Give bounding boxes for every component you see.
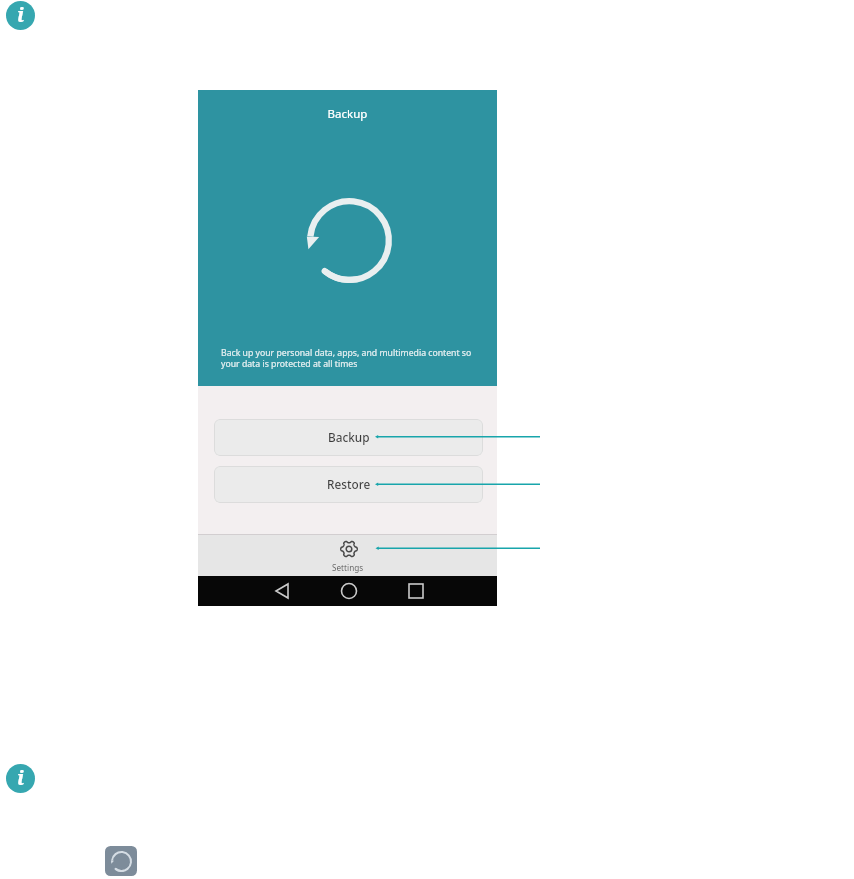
button[interactable]: Back <box>260 576 304 606</box>
button[interactable]: Recent apps <box>394 576 438 606</box>
staticText: i <box>17 1 25 28</box>
staticText: Settings <box>332 562 364 573</box>
button[interactable]: Restore <box>214 466 483 503</box>
button[interactable]: Backup app icon <box>105 846 137 876</box>
button[interactable]: Information <box>6 764 35 793</box>
staticText: Back up your personal data, apps, and mu… <box>221 347 477 370</box>
staticText: Backup <box>328 429 370 445</box>
staticText: i <box>17 764 25 791</box>
button[interactable]: Backup <box>214 419 483 456</box>
button[interactable]: Settings <box>198 534 497 576</box>
button[interactable]: Home <box>327 576 371 606</box>
staticText: Backup <box>198 106 497 122</box>
staticText: Restore <box>327 476 371 492</box>
button[interactable]: Information <box>6 1 35 30</box>
